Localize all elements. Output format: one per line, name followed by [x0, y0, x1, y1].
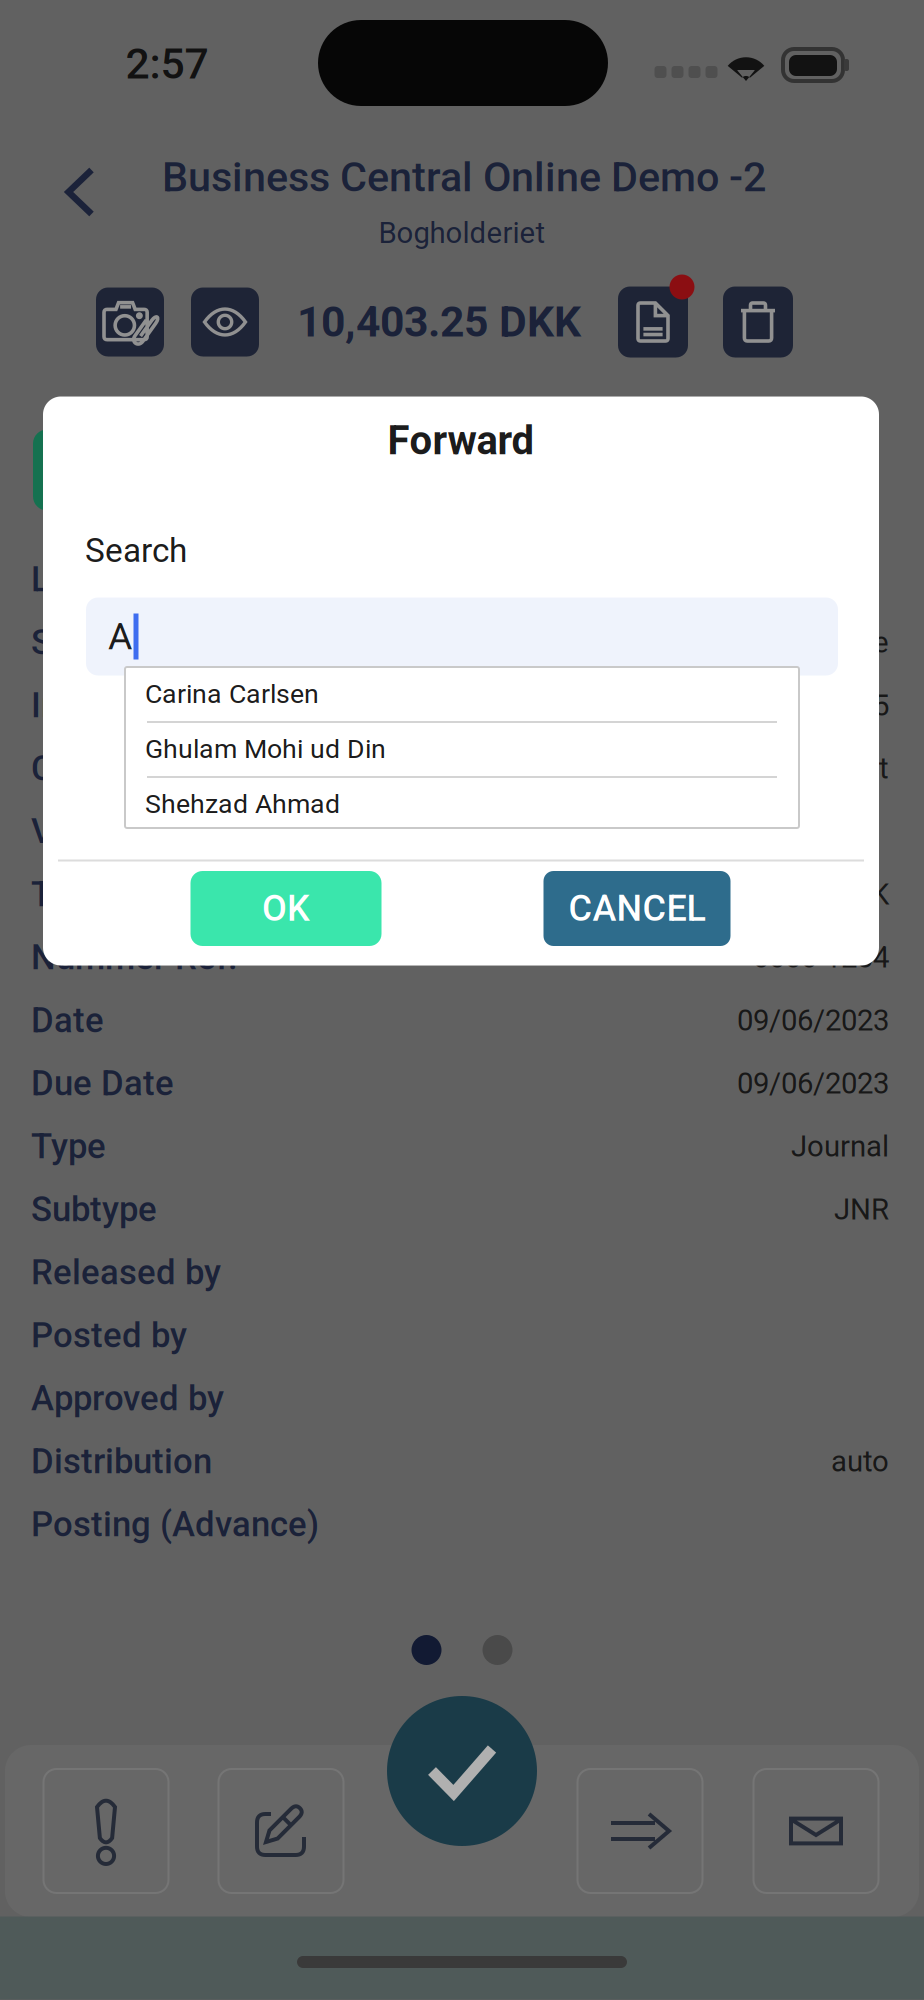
button[interactable]: Created by [0, 737, 924, 800]
button[interactable]: Carina Carlsen [105, 667, 819, 721]
button[interactable]: Nummer Ref. [0, 926, 924, 989]
staticText: Shehzad Ahmad Butt [614, 751, 889, 786]
staticText: Created by [31, 748, 200, 789]
staticText: Type [31, 1126, 106, 1167]
staticText: 09/06/2023 [737, 1066, 889, 1101]
button[interactable]: Approved by [0, 1367, 924, 1430]
staticText: Posted by [31, 1315, 187, 1356]
staticText: Due Date [31, 1063, 174, 1104]
staticText: Shehzad Ahmad [145, 788, 340, 820]
button[interactable]: Distribution [0, 1430, 924, 1493]
staticText: 0000-1234 [753, 940, 889, 975]
button[interactable]: Ghulam Mohi ud Din [105, 722, 819, 776]
staticText: Total [31, 874, 110, 915]
button[interactable]: Back [32, 144, 128, 240]
button[interactable]: Posted by [0, 1304, 924, 1367]
button[interactable]: Ledger [0, 548, 924, 611]
staticText: Nummer Ref. [31, 937, 238, 978]
button[interactable]: Preview [191, 287, 259, 356]
staticText: 10,403.25 DKK [297, 297, 581, 347]
staticText: CANCEL [568, 887, 705, 930]
staticText: VAT [31, 811, 94, 852]
button[interactable]: OK [190, 871, 381, 946]
staticText: OK [262, 887, 310, 930]
staticText: Distribution [31, 1441, 212, 1482]
staticText: 09/06/2023 [737, 1003, 889, 1038]
button[interactable]: Date [0, 989, 924, 1052]
staticText: Date [31, 1000, 104, 1041]
button[interactable]: Shehzad Ahmad [105, 777, 819, 831]
staticText: Posting (Advance) [31, 1504, 319, 1545]
staticText: Journal [791, 1129, 889, 1164]
button[interactable]: Documents [618, 286, 688, 357]
button[interactable]: Mail [753, 1769, 878, 1893]
button[interactable]: Invoice No. [0, 674, 924, 737]
staticText: 2023-0605 [753, 688, 889, 723]
button[interactable]: Forward [577, 1769, 702, 1893]
button[interactable]: VAT [0, 800, 924, 863]
staticText: Bogholderiet [378, 216, 545, 250]
button[interactable]: Edit [218, 1769, 343, 1893]
button[interactable]: CANCEL [543, 871, 730, 946]
staticText: Ghulam Mohi ud Din [145, 733, 386, 765]
staticText: Supplier [31, 622, 158, 663]
button[interactable]: Attach photo [96, 287, 164, 356]
button[interactable]: Posting (Advance) [0, 1493, 924, 1556]
button[interactable]: Approve document [33, 429, 333, 510]
staticText: Business Central Online Demo -2 [162, 153, 766, 201]
staticText: Carina Carlsen [145, 678, 319, 710]
staticText: Bogholderiet Invoice [622, 625, 889, 660]
staticText: Invoice No. [31, 685, 207, 726]
button[interactable]: Alerts [43, 1769, 168, 1893]
staticText: Subtype [31, 1189, 157, 1230]
staticText: Released by [31, 1252, 221, 1293]
button[interactable]: Type [0, 1115, 924, 1178]
staticText: Approved by [31, 1378, 224, 1419]
staticText: Ledger [31, 559, 140, 600]
staticText: Forward [387, 417, 534, 464]
button[interactable]: Supplier [0, 611, 924, 674]
button[interactable]: Total [0, 863, 924, 926]
staticText: 2:57 [125, 39, 208, 89]
button[interactable]: Delete [723, 286, 793, 357]
staticText: auto [831, 1444, 889, 1479]
staticText: JNR [834, 1192, 889, 1227]
button[interactable]: Subtype [0, 1178, 924, 1241]
button[interactable]: Due Date [0, 1052, 924, 1115]
staticText: Search [85, 531, 187, 570]
button[interactable]: Approve [387, 1696, 537, 1846]
staticText: 10,403.25 DKK [701, 877, 889, 912]
button[interactable]: Released by [0, 1241, 924, 1304]
staticText: A [108, 615, 132, 658]
